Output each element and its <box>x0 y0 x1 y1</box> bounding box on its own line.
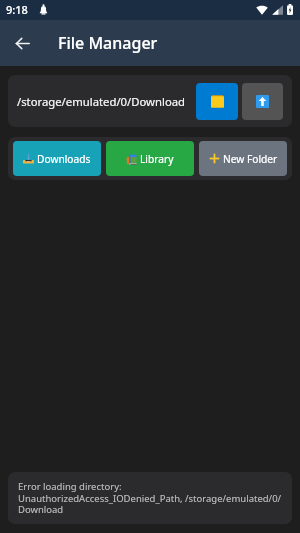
button[interactable]: Downloads <box>13 141 101 176</box>
staticText: 9:18 <box>6 2 28 17</box>
staticText: Error loading directory: UnauthorizedAcc… <box>18 480 282 516</box>
button[interactable]: Up one level <box>242 83 283 120</box>
button[interactable]: New Folder <box>199 141 287 176</box>
staticText: /storage/emulated/0/Download <box>17 94 186 109</box>
button[interactable]: Library <box>106 141 194 176</box>
button[interactable]: Open folder <box>196 83 238 120</box>
staticText: New Folder <box>223 152 278 166</box>
staticText: Downloads <box>37 152 91 166</box>
staticText: Library <box>140 152 174 166</box>
button[interactable]: Back <box>6 27 38 59</box>
staticText: File Manager <box>58 32 158 54</box>
